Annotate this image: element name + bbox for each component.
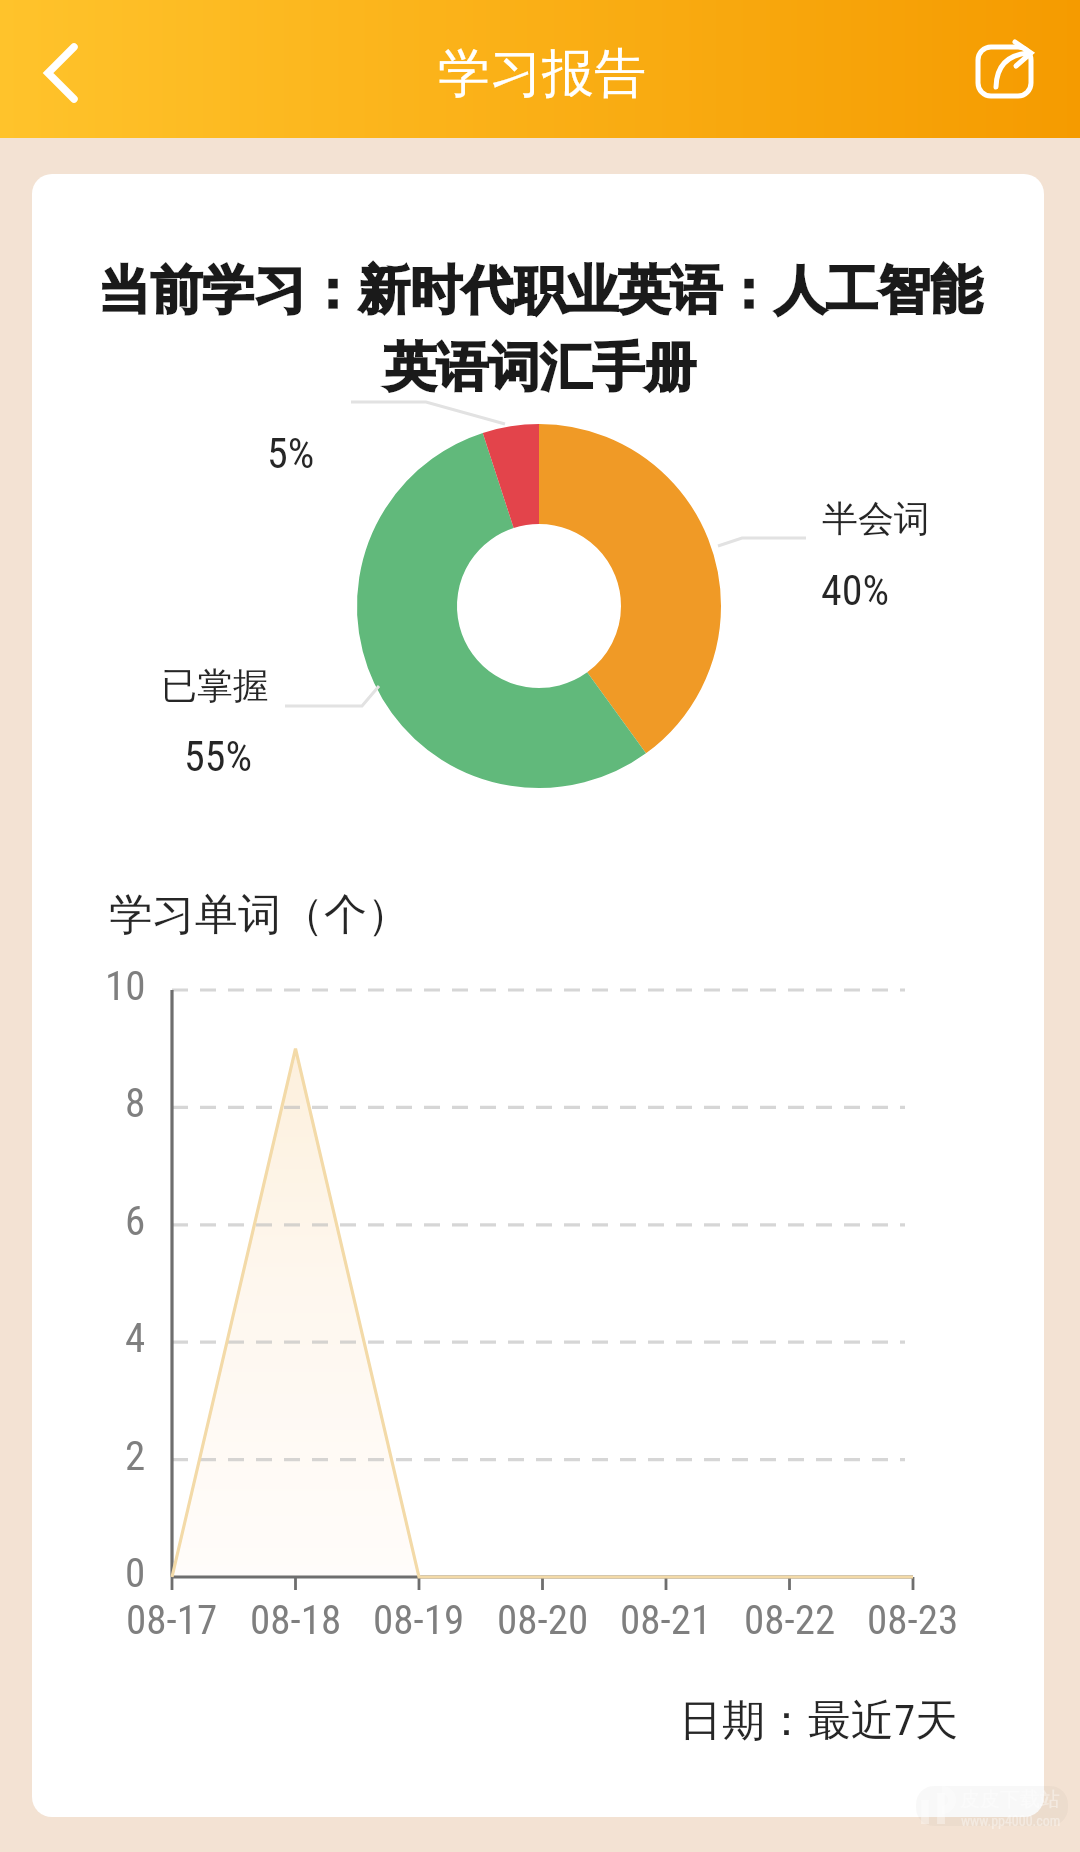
staticText: 08-23 (867, 1596, 959, 1644)
staticText: 08-22 (744, 1596, 836, 1644)
staticText: www.pp4000.com (961, 1813, 1061, 1829)
staticText: 08-19 (373, 1596, 465, 1644)
button[interactable]: Back (13, 25, 109, 121)
staticText: 55% (184, 732, 253, 781)
staticText: 4 (125, 1314, 146, 1362)
staticText: 40% (821, 566, 890, 615)
staticText: 2 (125, 1432, 146, 1480)
staticText: 0 (125, 1549, 146, 1597)
staticText: 学习单词（个） (109, 888, 410, 942)
staticText: 半会词 (822, 496, 930, 541)
button[interactable]: Share (958, 21, 1054, 117)
staticText: 日期：最近7天 (679, 1694, 959, 1748)
staticText: 08-18 (250, 1596, 342, 1644)
staticText: 5% (267, 429, 315, 478)
staticText: 6 (125, 1197, 146, 1245)
staticText: 08-21 (620, 1596, 712, 1644)
staticText: 皮皮下载站 (960, 1787, 1060, 1812)
staticText: 已掌握 (161, 663, 269, 708)
staticText: 10 (105, 962, 146, 1010)
staticText: 08-20 (497, 1596, 589, 1644)
staticText: 08-17 (126, 1596, 218, 1644)
staticText: 当前学习：新时代职业英语：人工智能 英语词汇手册 (60, 258, 1020, 401)
staticText: 学习报告 (438, 41, 646, 107)
staticText: 8 (125, 1079, 146, 1127)
